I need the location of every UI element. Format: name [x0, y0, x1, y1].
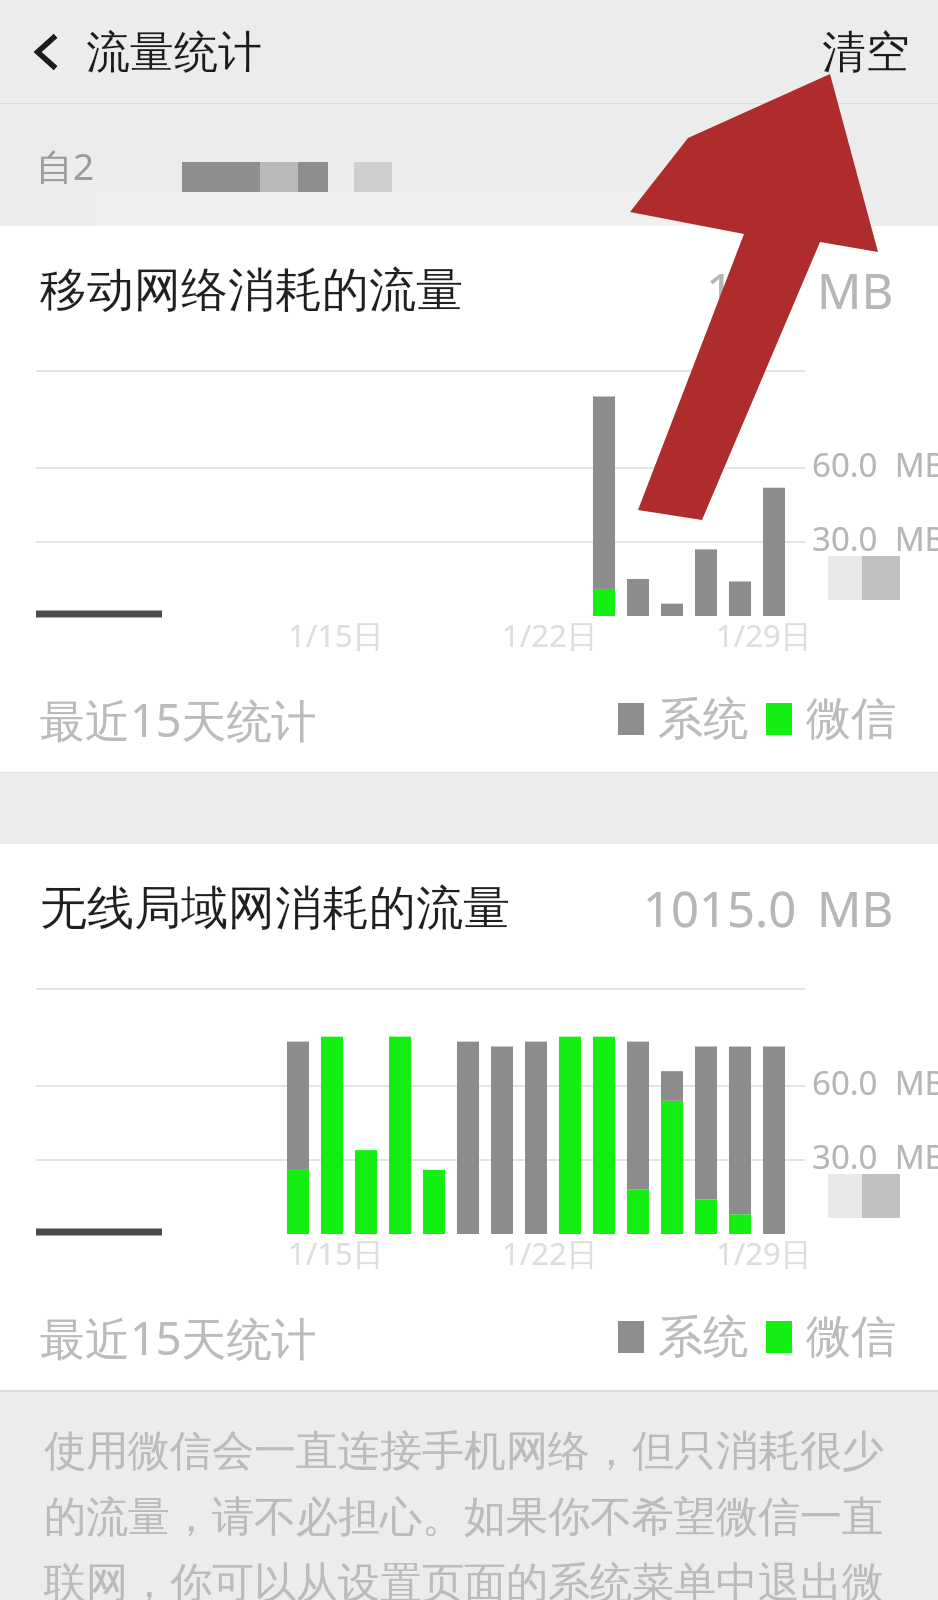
staticText: 清空 [822, 25, 910, 80]
staticText: 流量统计 [86, 25, 262, 80]
staticText: 60.0 MB [812, 1060, 938, 1105]
staticText: 微信 [806, 691, 896, 748]
staticText: 1015.0 [643, 875, 797, 942]
staticText: 无线局域网消耗的流量 [40, 879, 510, 938]
staticText: 60.0 MB [812, 442, 938, 487]
staticText: 1?.8 [706, 257, 797, 324]
staticText: 30.0 MB [812, 516, 938, 561]
staticText: 移动网络消耗的流量 [40, 261, 463, 320]
button[interactable]: 返回 [14, 20, 78, 84]
staticText: 1/22日 [502, 1232, 598, 1274]
staticText: 1/29日 [716, 614, 812, 656]
staticText: 1/15日 [288, 614, 384, 656]
staticText: 最近15天统计 [40, 689, 317, 750]
staticText: 1/15日 [288, 1232, 384, 1274]
staticText: MB [817, 875, 894, 942]
staticText: MB [817, 257, 894, 324]
staticText: 30.0 MB [812, 1134, 938, 1179]
staticText: 1/22日 [502, 614, 598, 656]
button[interactable]: 清空 [794, 7, 938, 98]
staticText: 系统 [658, 691, 748, 748]
staticText: 使用微信会一直连接手机网络，但只消耗很少的流量，请不必担心。如果你不希望微信一直… [44, 1425, 884, 1600]
staticText: 微信 [806, 1309, 896, 1366]
staticText: 1/29日 [716, 1232, 812, 1274]
staticText: 自2 [36, 140, 95, 191]
staticText: 最近15天统计 [40, 1307, 317, 1368]
staticText: 系统 [658, 1309, 748, 1366]
